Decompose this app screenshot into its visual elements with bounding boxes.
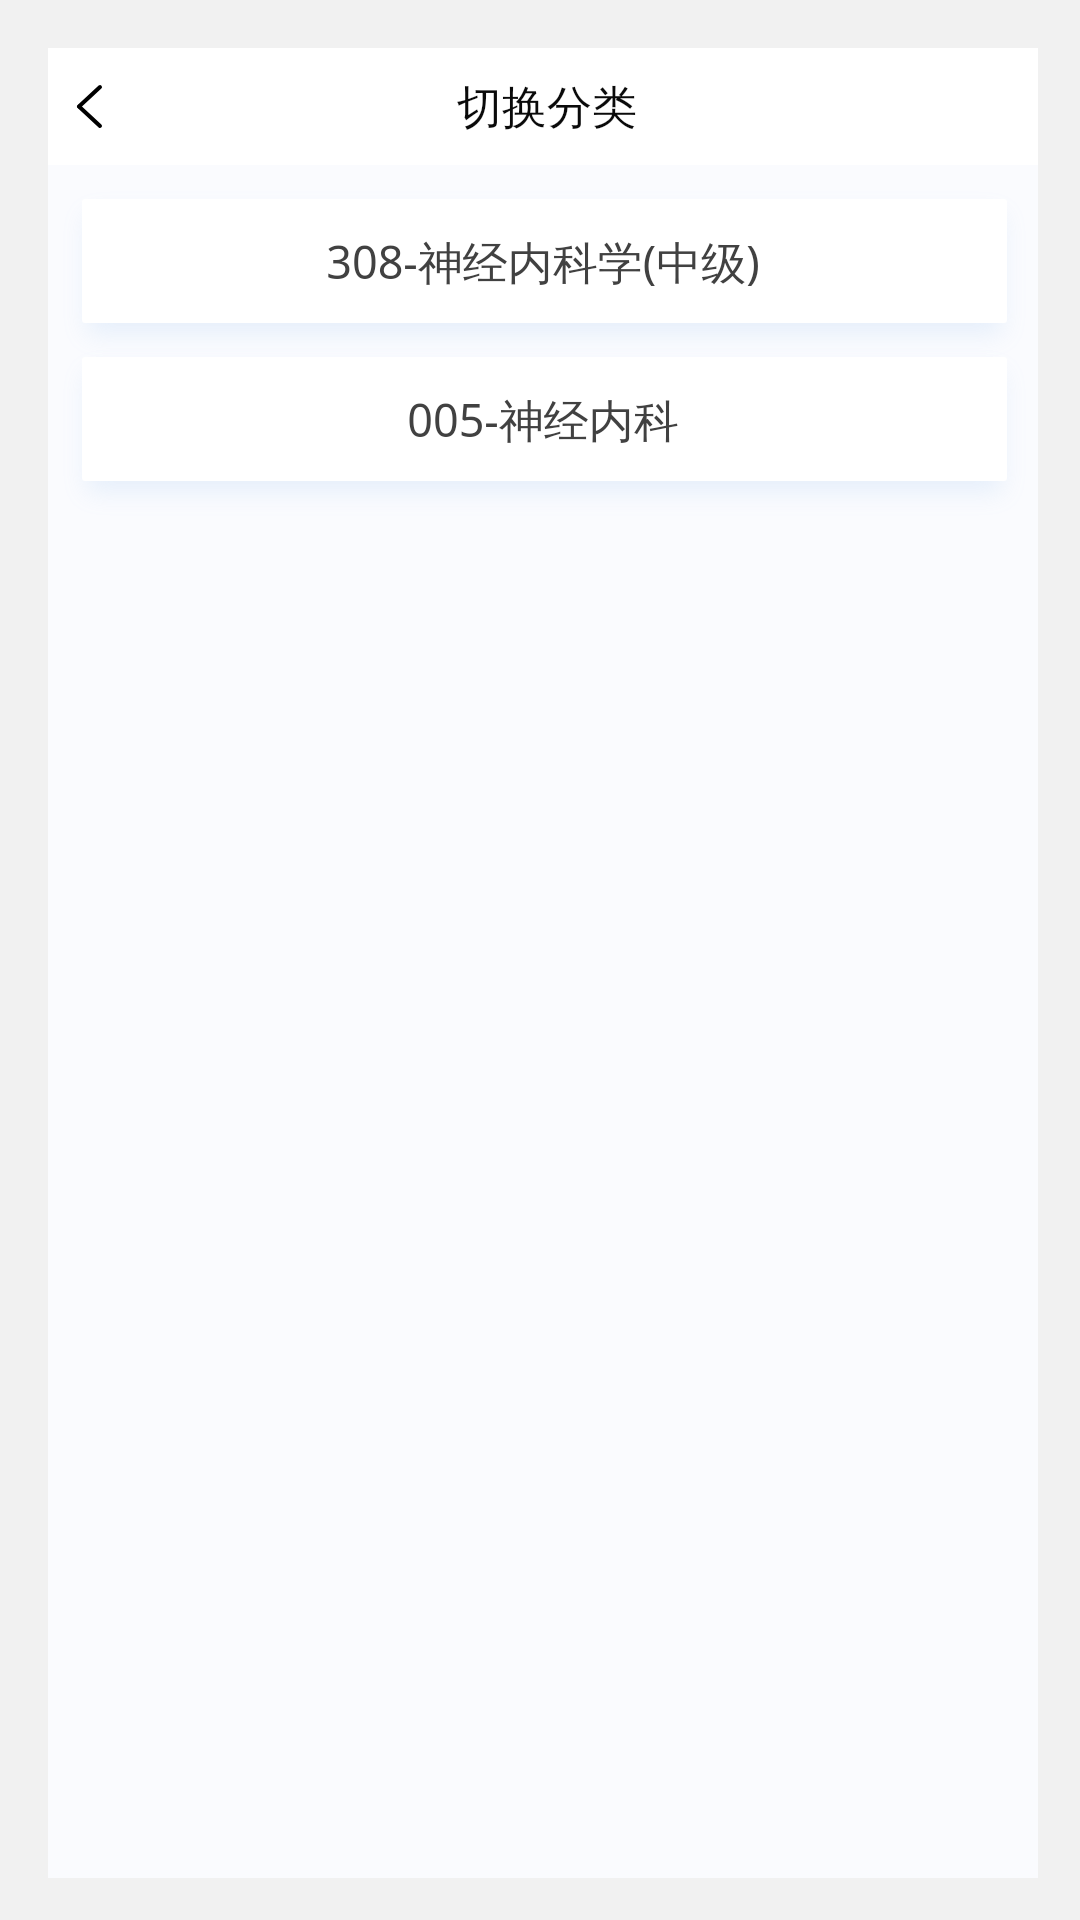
staticText: 切换分类 [457, 80, 637, 137]
button[interactable]: 005-神经内科 [82, 357, 1007, 481]
button[interactable]: 308-神经内科学(中级) [82, 199, 1007, 323]
staticText: 308-神经内科学(中级) [326, 231, 760, 292]
button[interactable]: Back [48, 66, 130, 148]
staticText: 005-神经内科 [407, 389, 679, 450]
